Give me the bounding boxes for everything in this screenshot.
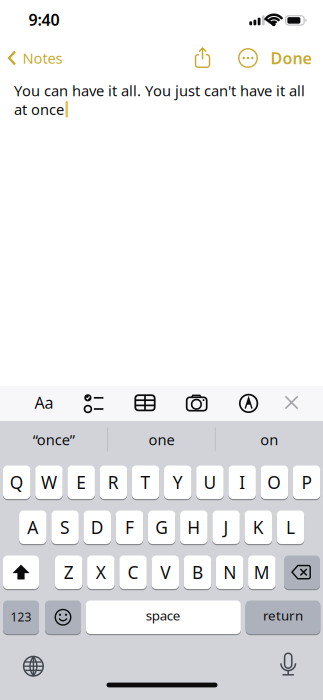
staticText: return bbox=[263, 606, 303, 624]
staticText: M bbox=[254, 561, 270, 584]
button[interactable]: E bbox=[67, 465, 95, 499]
staticText: Aa bbox=[34, 392, 53, 413]
staticText: F bbox=[125, 516, 134, 539]
staticText: L bbox=[286, 516, 295, 539]
staticText: K bbox=[253, 516, 264, 539]
staticText: S bbox=[60, 516, 70, 539]
staticText: at once bbox=[14, 99, 64, 119]
staticText: I bbox=[239, 471, 245, 494]
staticText: P bbox=[302, 471, 312, 494]
button[interactable]: Delete bbox=[284, 555, 320, 589]
staticText: Q bbox=[10, 471, 24, 494]
button[interactable]: D bbox=[83, 510, 111, 544]
button[interactable]: W bbox=[35, 465, 63, 499]
button[interactable]: Camera bbox=[186, 394, 207, 411]
staticText: V bbox=[160, 561, 170, 584]
staticText: Done bbox=[270, 47, 311, 69]
button[interactable]: Back bbox=[1, 43, 73, 73]
button[interactable]: Next keyboard bbox=[23, 656, 44, 677]
button[interactable]: one bbox=[111, 419, 211, 459]
button[interactable]: Format bbox=[29, 387, 59, 417]
button[interactable]: U bbox=[196, 465, 224, 499]
button[interactable]: S bbox=[51, 510, 79, 544]
button[interactable]: C bbox=[119, 555, 147, 589]
button[interactable]: return bbox=[246, 600, 320, 634]
staticText: B bbox=[192, 561, 203, 584]
staticText: C bbox=[128, 561, 139, 584]
button[interactable]: M bbox=[248, 555, 276, 589]
staticText: one bbox=[148, 430, 174, 449]
staticText: 9:40 bbox=[28, 9, 59, 30]
staticText: 123 bbox=[10, 609, 31, 625]
button[interactable]: Y bbox=[164, 465, 191, 499]
button[interactable]: A bbox=[19, 510, 47, 544]
button[interactable]: J bbox=[212, 510, 240, 544]
button[interactable]: P bbox=[293, 465, 320, 499]
button[interactable]: K bbox=[244, 510, 272, 544]
staticText: O bbox=[267, 471, 281, 494]
button[interactable]: on bbox=[219, 419, 319, 459]
button[interactable]: Dismiss keyboard bbox=[284, 395, 299, 410]
staticText: H bbox=[187, 516, 200, 539]
staticText: A bbox=[27, 516, 38, 539]
button[interactable]: Markup bbox=[240, 394, 258, 412]
staticText: R bbox=[108, 471, 119, 494]
button[interactable]: Shift bbox=[3, 555, 39, 589]
button[interactable]: Share bbox=[194, 47, 211, 68]
staticText: N bbox=[223, 561, 236, 584]
button[interactable]: space bbox=[86, 600, 241, 634]
button[interactable]: I bbox=[228, 465, 256, 499]
staticText: on bbox=[260, 430, 278, 449]
button[interactable]: Emoji bbox=[45, 600, 81, 634]
staticText: U bbox=[203, 471, 216, 494]
staticText: Z bbox=[64, 561, 74, 584]
staticText: Notes bbox=[22, 48, 62, 68]
staticText: You can have it all. You just can't have… bbox=[14, 81, 305, 100]
button[interactable]: O bbox=[261, 465, 288, 499]
staticText: “once” bbox=[33, 430, 75, 449]
staticText: space bbox=[146, 606, 181, 624]
button[interactable]: L bbox=[277, 510, 304, 544]
staticText: E bbox=[76, 471, 86, 494]
staticText: W bbox=[41, 471, 57, 494]
button[interactable]: H bbox=[180, 510, 208, 544]
staticText: D bbox=[91, 516, 104, 539]
button[interactable]: Done bbox=[270, 47, 311, 69]
staticText: T bbox=[141, 471, 151, 494]
staticText: Y bbox=[173, 471, 183, 494]
button[interactable]: “once” bbox=[4, 419, 104, 459]
button[interactable]: Table bbox=[135, 395, 155, 411]
button[interactable]: Q bbox=[3, 465, 30, 499]
button[interactable]: N bbox=[216, 555, 243, 589]
button[interactable]: F bbox=[116, 510, 143, 544]
button[interactable]: X bbox=[87, 555, 115, 589]
staticText: G bbox=[155, 516, 168, 539]
button[interactable]: Numbers bbox=[3, 600, 39, 634]
button[interactable]: G bbox=[148, 510, 175, 544]
button[interactable]: B bbox=[184, 555, 211, 589]
button[interactable]: V bbox=[151, 555, 179, 589]
button[interactable]: Z bbox=[55, 555, 82, 589]
button[interactable]: Dictate bbox=[280, 652, 296, 676]
button[interactable]: T bbox=[132, 465, 159, 499]
button[interactable]: R bbox=[100, 465, 127, 499]
button[interactable]: Checklist bbox=[84, 394, 104, 413]
button[interactable]: More bbox=[238, 48, 258, 68]
staticText: J bbox=[224, 516, 229, 539]
staticText: X bbox=[96, 561, 106, 584]
